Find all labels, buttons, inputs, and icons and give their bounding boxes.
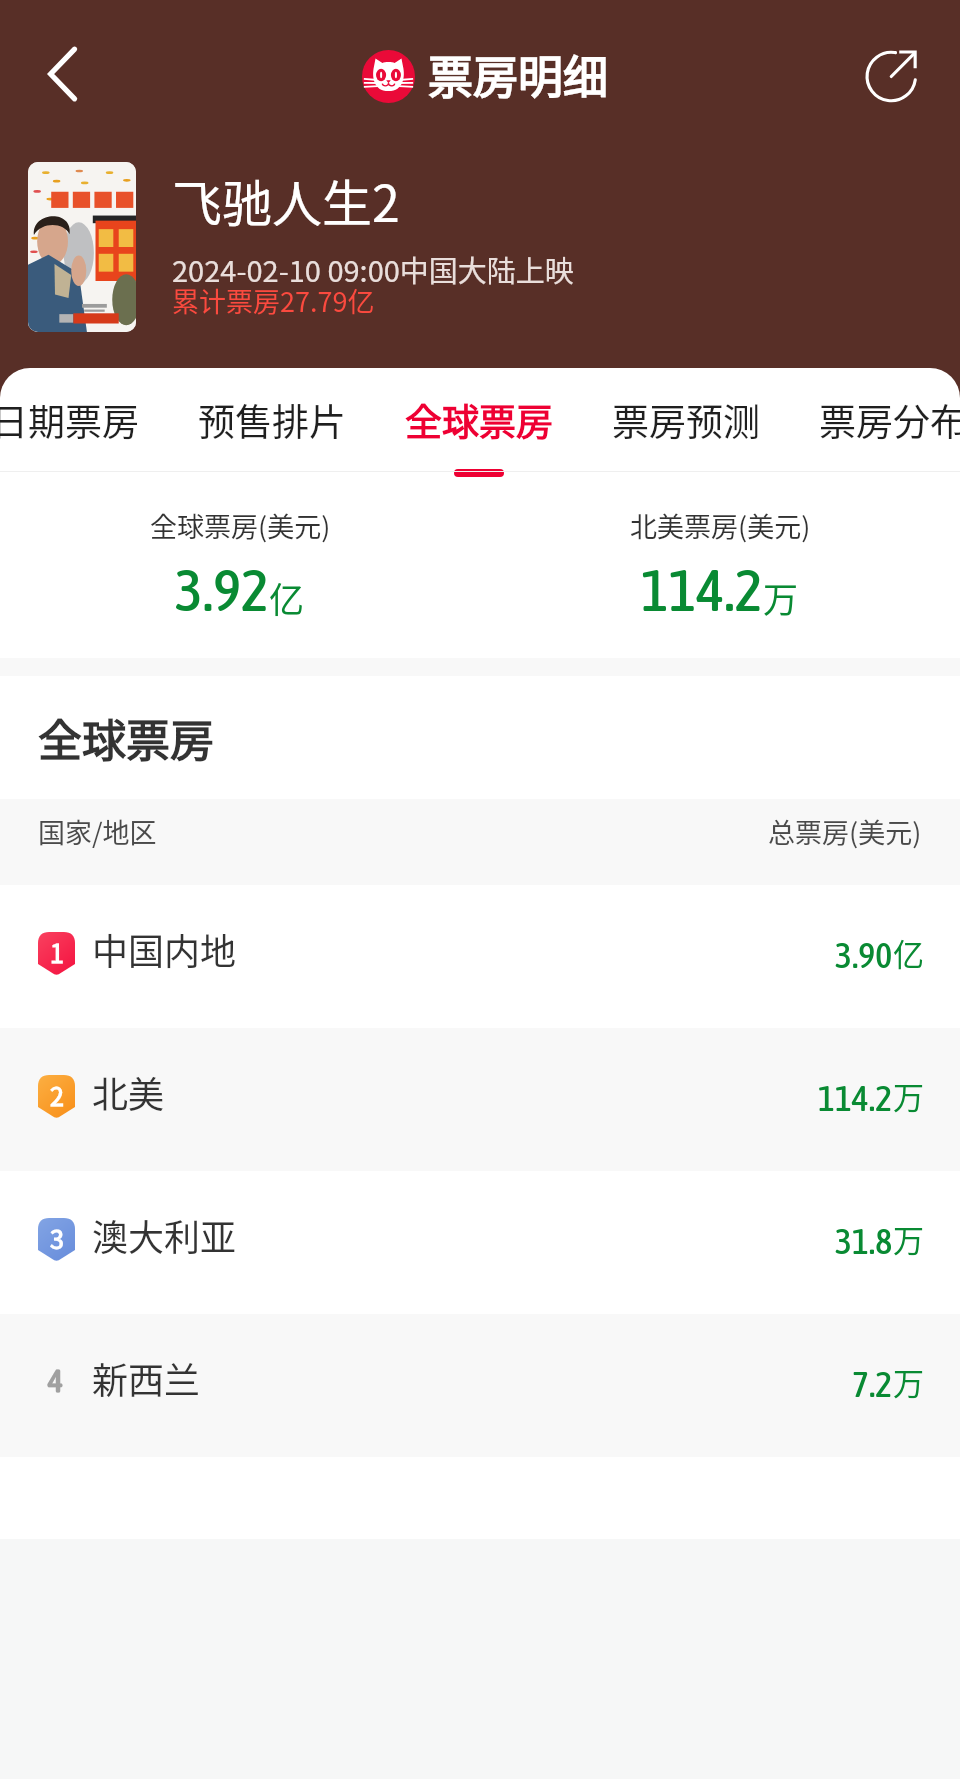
staticText: 票房分布 xyxy=(819,393,960,447)
staticText: 新西兰 xyxy=(92,1352,201,1404)
button[interactable]: 票房分布 xyxy=(789,368,960,472)
button[interactable]: 日期票房 xyxy=(0,368,168,472)
staticText: 北美票房(美元) xyxy=(630,506,811,545)
staticText: 全球票房 xyxy=(405,393,553,447)
staticText: 万 xyxy=(893,1359,924,1404)
staticText: 澳大利亚 xyxy=(92,1209,237,1261)
staticText: 亿 xyxy=(893,930,924,975)
button[interactable]: 1 xyxy=(0,885,960,1028)
staticText: 票房预测 xyxy=(612,393,760,447)
staticText: 预售排片 xyxy=(198,393,346,447)
staticText: 累计票房27.79亿 xyxy=(172,281,375,320)
staticText: 万 xyxy=(893,1073,924,1118)
button[interactable]: Back xyxy=(20,32,104,116)
staticText: 国家/地区 xyxy=(38,812,157,851)
staticText: 114.2 xyxy=(641,556,763,624)
staticText: 2024-02-10 09:00中国大陆上映 xyxy=(172,248,574,290)
button[interactable]: Share xyxy=(850,32,934,116)
staticText: 2 xyxy=(50,1077,64,1113)
staticText: 总票房(美元) xyxy=(768,812,922,851)
staticText: 亿 xyxy=(269,572,305,623)
button[interactable]: 2 xyxy=(0,1028,960,1171)
button[interactable]: 票房预测 xyxy=(582,368,789,472)
staticText: 3 xyxy=(50,1220,64,1256)
staticText: 31.8 xyxy=(835,1220,893,1261)
button[interactable]: 预售排片 xyxy=(168,368,375,472)
staticText: 3.90 xyxy=(835,934,893,975)
staticText: 1 xyxy=(50,934,64,970)
button[interactable]: 4 xyxy=(0,1314,960,1457)
staticText: 万 xyxy=(893,1216,924,1261)
staticText: 7.2 xyxy=(852,1363,893,1404)
staticText: 北美 xyxy=(92,1066,165,1118)
staticText: 全球票房(美元) xyxy=(150,506,331,545)
staticText: 万 xyxy=(763,572,799,623)
button[interactable]: 3 xyxy=(0,1171,960,1314)
staticText: 日期票房 xyxy=(0,393,139,447)
staticText: 飞驰人生2 xyxy=(172,164,400,236)
staticText: 票房明细 xyxy=(428,42,609,107)
staticText: 114.2 xyxy=(818,1077,893,1118)
staticText: 4 xyxy=(48,1362,64,1399)
staticText: 3.92 xyxy=(175,556,269,624)
staticText: 全球票房 xyxy=(38,706,214,770)
staticText: 中国内地 xyxy=(92,923,237,975)
button[interactable]: 全球票房 xyxy=(375,368,582,472)
